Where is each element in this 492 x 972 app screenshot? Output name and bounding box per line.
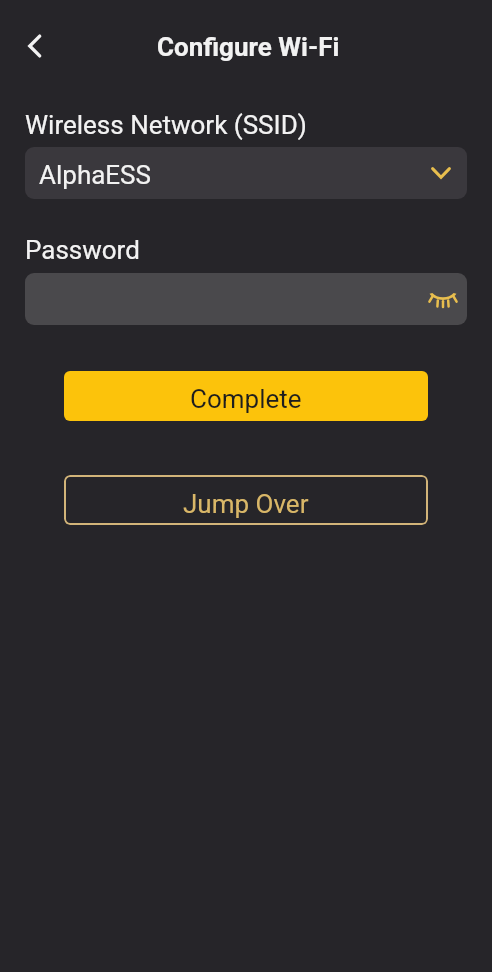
button[interactable]: Jump Over xyxy=(64,475,428,525)
staticText: Configure Wi-Fi xyxy=(157,32,340,62)
button[interactable]: Show password xyxy=(426,282,460,316)
button[interactable]: Password input field xyxy=(25,273,467,325)
button[interactable]: Complete xyxy=(64,371,428,421)
staticText: Password xyxy=(25,235,140,265)
staticText: Complete xyxy=(190,384,302,414)
staticText: Wireless Network (SSID) xyxy=(25,110,307,140)
button[interactable]: Wireless network: AlphaESS. Choose netwo… xyxy=(25,147,467,199)
staticText: Jump Over xyxy=(183,489,309,519)
button[interactable]: Back xyxy=(9,20,61,72)
staticText: AlphaESS xyxy=(39,160,151,190)
